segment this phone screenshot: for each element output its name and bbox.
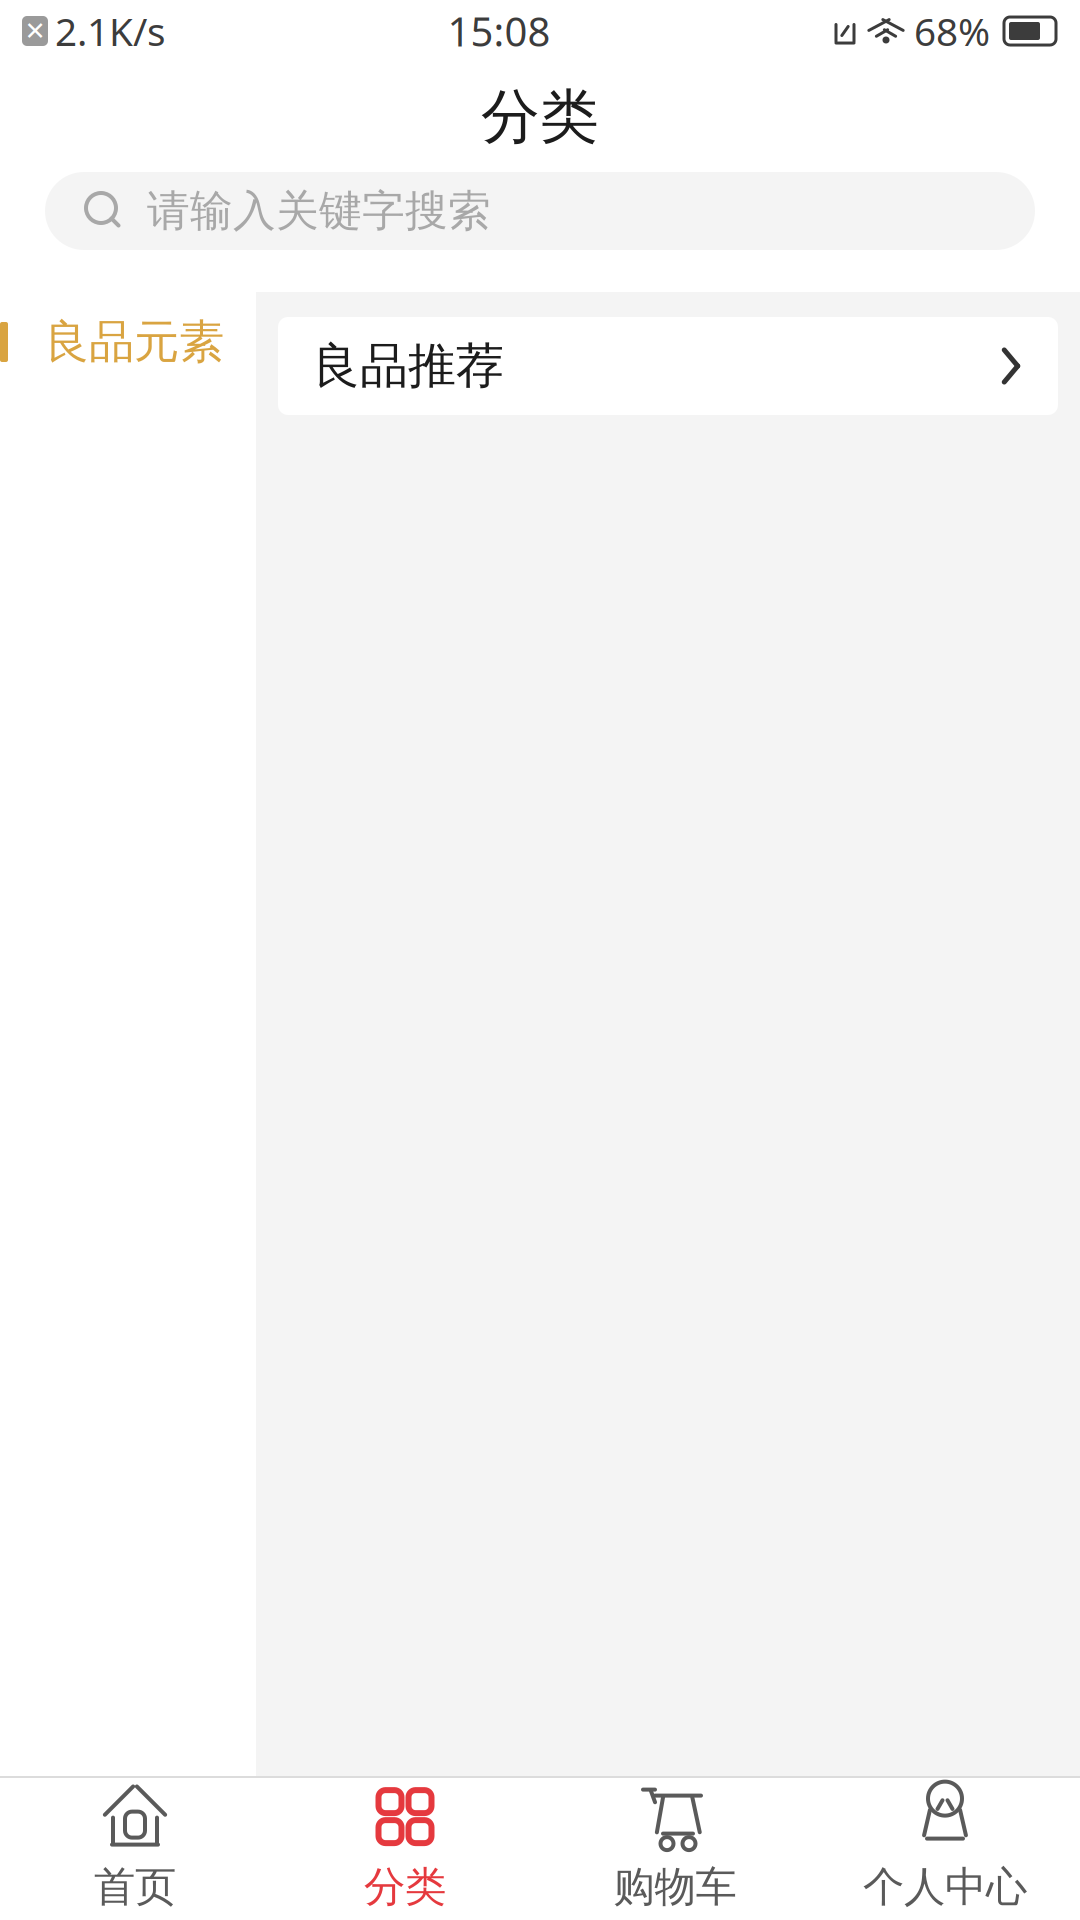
staticText: 良品推荐	[312, 336, 504, 395]
button[interactable]: 分类	[270, 1778, 540, 1920]
button[interactable]: 请输入关键字搜索	[45, 172, 1035, 250]
staticText: 良品元素	[44, 314, 224, 370]
button[interactable]: 首页	[0, 1778, 270, 1920]
staticText: 购物车	[613, 1862, 736, 1912]
button[interactable]: 良品推荐	[278, 317, 1058, 415]
staticText: 68%	[914, 5, 990, 57]
button[interactable]: 个人中心	[810, 1778, 1080, 1920]
button[interactable]: 良品元素	[0, 292, 256, 392]
staticText: ✕	[24, 17, 45, 45]
button[interactable]: 购物车	[540, 1778, 810, 1920]
staticText: 个人中心	[863, 1862, 1027, 1912]
staticText: 2.1K/s	[55, 5, 166, 57]
staticText: 分类	[481, 81, 599, 153]
staticText: 15:08	[447, 4, 550, 57]
staticText: 分类	[364, 1862, 446, 1912]
staticText: 首页	[94, 1862, 176, 1912]
staticText: 请输入关键字搜索	[147, 185, 491, 237]
